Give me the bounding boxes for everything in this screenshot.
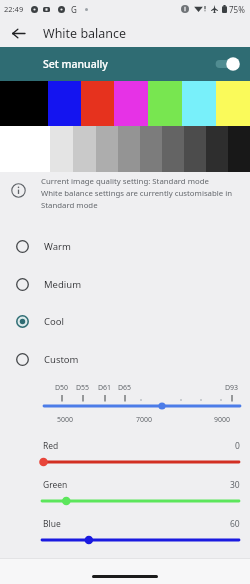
staticText: Red: [43, 440, 59, 452]
staticText: Cool: [44, 315, 64, 328]
button[interactable]: Green: [0, 477, 250, 511]
staticText: 30: [230, 479, 240, 491]
staticText: 7000: [136, 415, 153, 425]
staticText: Warm: [44, 240, 71, 253]
staticText: D93: [225, 383, 239, 393]
staticText: D50: [55, 383, 69, 393]
button[interactable]: Blue: [0, 516, 250, 550]
staticText: Set manually: [43, 57, 108, 71]
staticText: 60: [230, 518, 240, 530]
staticText: Custom: [44, 353, 79, 366]
staticText: Medium: [44, 278, 82, 291]
button[interactable]: Custom: [0, 341, 250, 378]
staticText: D65: [118, 383, 132, 393]
staticText: White balance: [43, 25, 127, 42]
staticText: 5000: [57, 415, 74, 425]
staticText: D55: [76, 383, 90, 393]
button[interactable]: Back: [4, 19, 32, 47]
staticText: Green: [43, 479, 68, 491]
staticText: Current image quality setting: Standard …: [41, 176, 241, 211]
button[interactable]: Warm: [0, 228, 250, 265]
button[interactable]: Red: [0, 438, 250, 472]
staticText: D61: [98, 383, 112, 393]
button[interactable]: Set manually: [0, 47, 250, 81]
staticText: G: [71, 4, 77, 15]
staticText: 0: [235, 440, 240, 452]
button[interactable]: Cool: [0, 303, 250, 340]
staticText: Blue: [43, 518, 61, 530]
staticText: 22:49: [4, 4, 24, 14]
staticText: 75%: [229, 4, 245, 15]
staticText: 9000: [214, 415, 231, 425]
button[interactable]: Medium: [0, 266, 250, 303]
button[interactable]: D50: [0, 376, 250, 428]
